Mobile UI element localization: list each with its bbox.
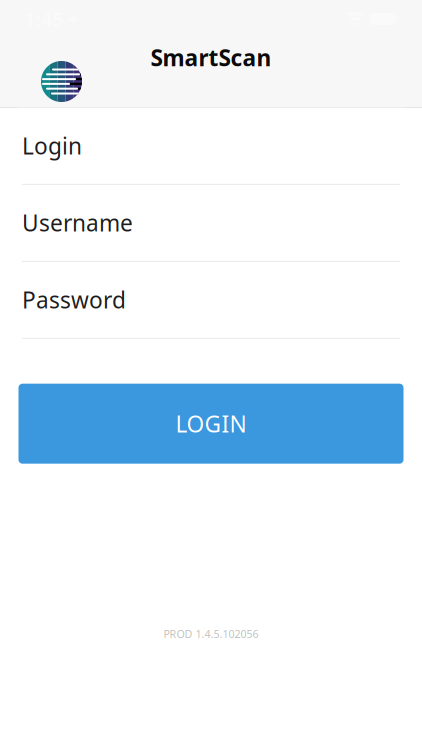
staticText: Password — [22, 285, 126, 315]
button[interactable]: Username — [22, 185, 400, 262]
staticText: Login — [22, 131, 82, 161]
staticText: Username — [22, 208, 133, 238]
staticText: LOGIN — [175, 409, 246, 439]
staticText: PROD 1.4.5.102056 — [163, 627, 258, 641]
button[interactable]: SmartScan logo — [41, 61, 82, 102]
button[interactable]: LOGIN — [18, 384, 403, 464]
button[interactable]: Password — [22, 262, 400, 339]
button[interactable]: Login — [22, 108, 400, 185]
staticText: SmartScan — [150, 42, 271, 72]
